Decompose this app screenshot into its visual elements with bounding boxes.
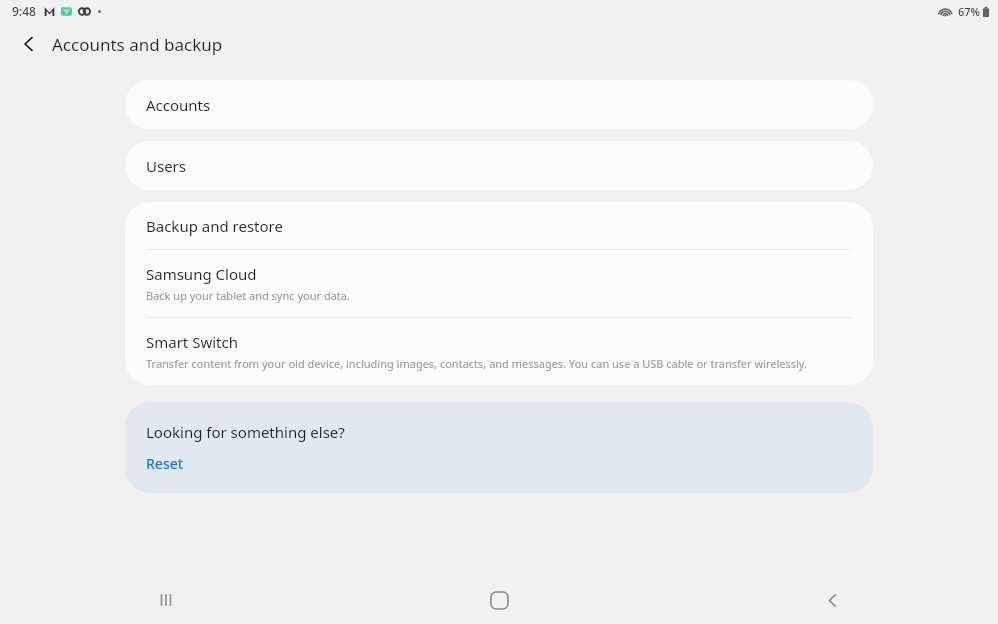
button[interactable]: Back bbox=[812, 580, 852, 620]
staticText: Smart Switch bbox=[146, 332, 238, 352]
staticText: 67% bbox=[958, 4, 980, 19]
button[interactable]: Back bbox=[12, 27, 46, 61]
staticText: Accounts and backup bbox=[52, 33, 223, 56]
staticText: 9:48 bbox=[12, 3, 36, 19]
button[interactable]: Users bbox=[125, 141, 873, 190]
staticText: Backup and restore bbox=[146, 216, 283, 236]
button[interactable]: Home bbox=[479, 580, 519, 620]
button[interactable]: Samsung Cloud bbox=[125, 250, 873, 317]
staticText: Reset bbox=[146, 454, 184, 473]
staticText: Samsung Cloud bbox=[146, 264, 257, 284]
staticText: Transfer content from your old device, i… bbox=[146, 356, 807, 371]
staticText: Accounts bbox=[146, 95, 211, 115]
staticText: Looking for something else? bbox=[146, 422, 345, 442]
button[interactable]: Smart Switch bbox=[125, 318, 873, 385]
staticText: Back up your tablet and sync your data. bbox=[146, 288, 350, 303]
button[interactable]: Accounts bbox=[125, 80, 873, 129]
staticText: Users bbox=[146, 156, 186, 176]
button[interactable]: Backup and restore bbox=[125, 202, 873, 249]
button[interactable]: Reset bbox=[146, 454, 184, 473]
button[interactable]: Recents bbox=[146, 580, 186, 620]
